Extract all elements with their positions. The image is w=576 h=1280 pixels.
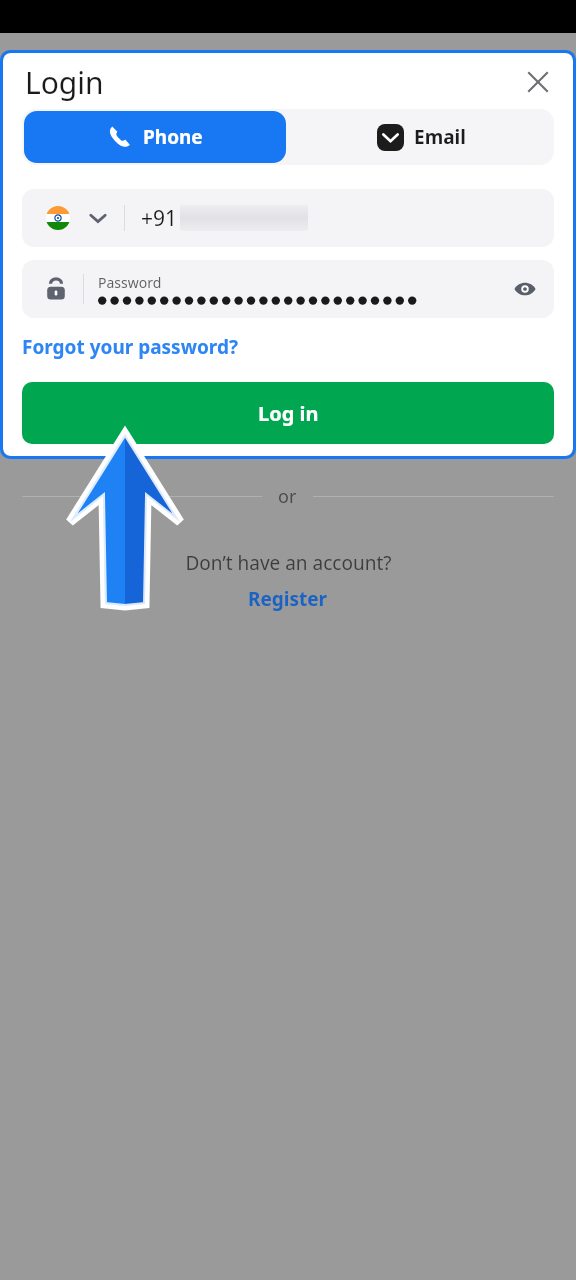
button[interactable]: Phone: [24, 111, 286, 163]
button[interactable]: Register: [248, 586, 328, 612]
staticText: Forgot your password?: [22, 334, 238, 360]
staticText: +91: [141, 204, 178, 233]
staticText: or: [278, 484, 297, 509]
other: Select country code: [88, 208, 108, 228]
staticText: Log in: [258, 400, 319, 427]
button[interactable]: Show password: [502, 266, 548, 312]
staticText: Phone: [143, 124, 203, 150]
staticText: Email: [414, 124, 466, 150]
button[interactable]: Select country code: [22, 189, 554, 247]
button[interactable]: Password: [22, 260, 554, 318]
staticText: Don’t have an account?: [185, 550, 392, 576]
button[interactable]: Close: [517, 61, 559, 103]
button[interactable]: Email: [288, 109, 554, 165]
staticText: Password: [98, 273, 162, 292]
staticText: Register: [248, 586, 328, 612]
button[interactable]: Log in: [22, 382, 554, 444]
button[interactable]: Forgot your password?: [22, 334, 238, 360]
staticText: Login: [25, 62, 104, 103]
